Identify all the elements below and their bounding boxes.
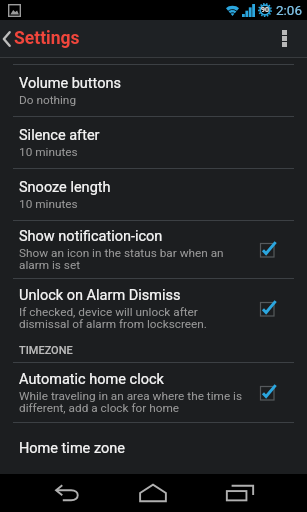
button[interactable]: Recent apps	[195, 474, 280, 512]
staticText: 10 minutes	[19, 197, 78, 211]
staticText: While traveling in an area where the tim…	[19, 389, 243, 415]
staticText: Show an icon in the status bar when an a…	[19, 246, 224, 272]
button[interactable]: Silence after	[0, 117, 307, 168]
staticText: Do nothing	[19, 93, 77, 107]
button[interactable]: Show notification-icon	[0, 221, 307, 278]
button[interactable]: Volume buttons	[0, 65, 307, 116]
staticText: Settings	[14, 28, 80, 49]
button[interactable]: Automatic home clock	[0, 363, 307, 422]
staticText: Show notification-icon	[19, 228, 163, 245]
staticText: 10 minutes	[19, 145, 78, 159]
staticText: 2:06	[276, 2, 303, 18]
button[interactable]: More options	[268, 22, 307, 55]
staticText: Silence after	[19, 127, 100, 144]
button[interactable]: Home time zone	[0, 423, 307, 474]
staticText: Snooze length	[19, 179, 111, 196]
button[interactable]: Snooze length	[0, 169, 307, 220]
staticText: Unlock on Alarm Dismiss	[19, 287, 181, 304]
staticText: Home time zone	[19, 440, 125, 457]
staticText: If checked, device will unlock after dis…	[19, 305, 207, 331]
staticText: TIMEZONE	[19, 344, 73, 357]
staticText: 90	[261, 6, 269, 14]
button[interactable]: Unlock on Alarm Dismiss	[0, 279, 307, 338]
button[interactable]: Home	[110, 474, 195, 512]
staticText: Automatic home clock	[19, 371, 164, 388]
button[interactable]: Navigate up	[0, 28, 88, 49]
staticText: Volume buttons	[19, 75, 121, 92]
button[interactable]: Back	[25, 474, 110, 512]
